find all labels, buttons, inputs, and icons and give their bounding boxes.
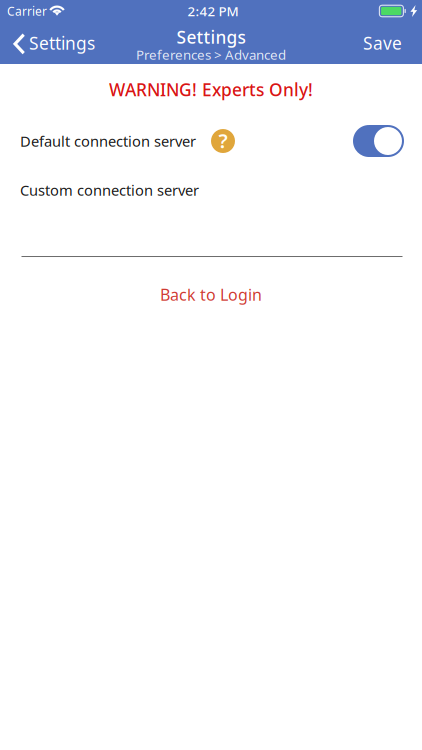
button[interactable]: Settings [0, 25, 103, 60]
staticText: Settings [176, 26, 245, 49]
button[interactable]: Back to Login [136, 276, 286, 313]
staticText: Save [363, 31, 402, 54]
staticText: Settings [29, 31, 95, 54]
staticText: WARNING! Experts Only! [109, 78, 313, 101]
staticText: Preferences > Advanced [136, 46, 286, 63]
button[interactable]: Help: default connection server [211, 129, 235, 153]
staticText: Default connection server [20, 131, 196, 151]
button[interactable]: Custom connection server [20, 182, 402, 257]
staticText: Carrier [7, 3, 47, 19]
staticText: 2:42 PM [187, 2, 238, 20]
staticText: Custom connection server [20, 180, 199, 200]
button[interactable]: Save [353, 25, 422, 60]
staticText: ? [218, 127, 227, 154]
button[interactable]: Use default connection server [353, 125, 404, 157]
staticText: Back to Login [160, 284, 262, 305]
